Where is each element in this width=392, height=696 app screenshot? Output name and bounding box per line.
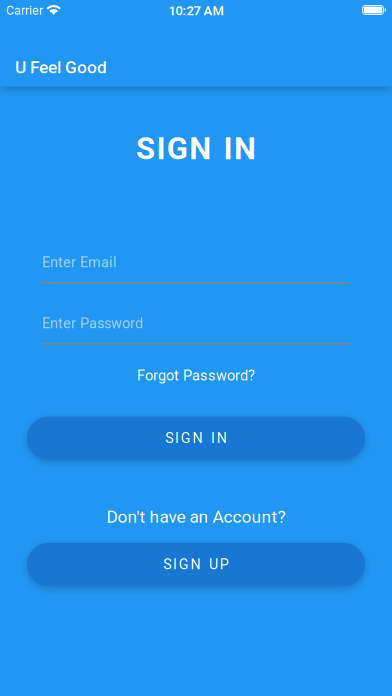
staticText: I [224, 130, 233, 167]
button[interactable]: Enter Email [42, 254, 350, 283]
staticText: I [211, 430, 215, 446]
staticText: S [136, 130, 155, 167]
staticText: N [192, 430, 202, 446]
staticText: Enter Password [42, 315, 143, 332]
staticText: Forgot Password? [137, 367, 255, 384]
staticText: N [217, 430, 227, 446]
staticText: U [209, 556, 218, 573]
staticText: N [190, 556, 200, 573]
staticText: U Feel Good [15, 57, 107, 77]
button[interactable]: Enter Password [42, 315, 350, 345]
staticText: G [167, 130, 188, 167]
staticText: G [179, 556, 189, 573]
staticText: 10:27 AM [168, 3, 223, 18]
staticText: S [165, 430, 173, 446]
staticText: Carrier [6, 3, 43, 18]
staticText: P [220, 556, 229, 573]
button[interactable]: S [27, 417, 365, 460]
button[interactable]: S [27, 543, 365, 586]
staticText: I [175, 430, 179, 446]
staticText: N [189, 130, 211, 167]
staticText: G [181, 430, 191, 446]
staticText: Don't have an Account? [106, 507, 285, 527]
button[interactable]: Forgot Password? [137, 367, 255, 384]
staticText: S [163, 556, 171, 573]
staticText: I [156, 130, 165, 167]
staticText: I [173, 556, 177, 573]
staticText: N [234, 130, 256, 167]
staticText: Enter Email [42, 254, 117, 271]
